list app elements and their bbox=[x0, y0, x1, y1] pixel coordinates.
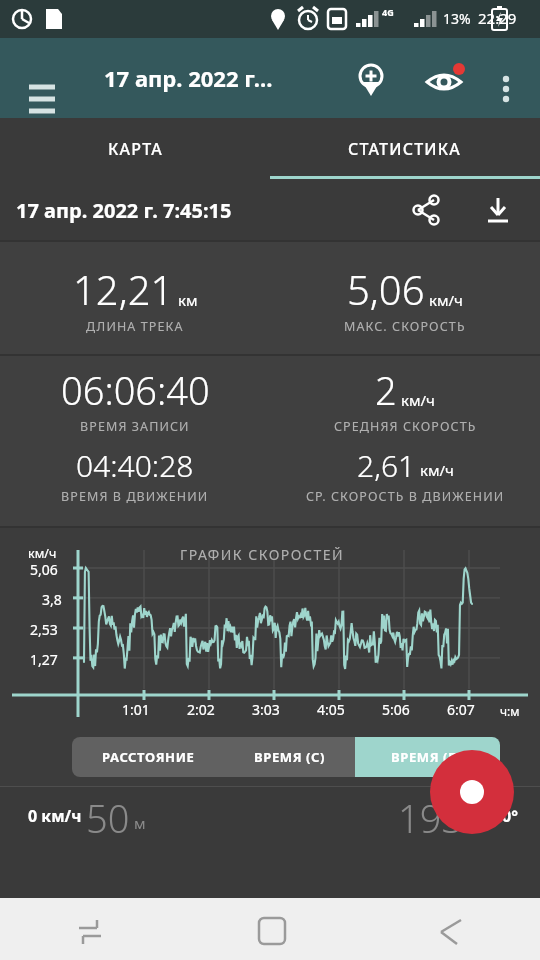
staticText: ВРЕМЯ В ДВИЖЕНИИ bbox=[61, 488, 209, 505]
staticText: ДЛИНА ТРЕКА bbox=[86, 318, 184, 335]
staticText: 04:40:28 bbox=[76, 445, 194, 486]
staticText: 06:06:40 bbox=[61, 364, 210, 416]
staticText: км/ч bbox=[429, 290, 463, 310]
button[interactable]: Menu bbox=[14, 58, 70, 114]
staticText: 3,8 bbox=[42, 590, 62, 609]
staticText: СТАТИСТИКА bbox=[348, 138, 462, 160]
staticText: км/ч bbox=[401, 390, 435, 410]
staticText: 12,21 bbox=[73, 262, 174, 316]
staticText: м bbox=[134, 813, 146, 833]
button[interactable]: РАССТОЯНИЕ bbox=[72, 737, 225, 777]
button[interactable]: Home bbox=[180, 898, 360, 960]
button[interactable]: 06:06:40 bbox=[0, 364, 270, 435]
staticText: СР. СКОРОСТЬ В ДВИЖЕНИИ bbox=[306, 488, 505, 505]
staticText: 4:05 bbox=[317, 700, 345, 719]
staticText: 2,53 bbox=[30, 620, 58, 639]
button[interactable]: Record bbox=[430, 750, 514, 834]
button[interactable]: 2,61 bbox=[270, 445, 540, 505]
staticText: 5,06 bbox=[347, 262, 425, 316]
button[interactable]: Visibility bbox=[418, 54, 470, 106]
staticText: 22:29 bbox=[478, 8, 517, 28]
staticText: 2 bbox=[375, 364, 397, 416]
staticText: 2:02 bbox=[187, 700, 215, 719]
staticText: ГРАФИК СКОРОСТЕЙ bbox=[180, 545, 345, 564]
button[interactable]: 12,21 bbox=[0, 262, 270, 335]
staticText: 5,06 bbox=[30, 560, 58, 579]
staticText: км/ч bbox=[28, 545, 57, 562]
staticText: ВРЕМЯ ЗАПИСИ bbox=[80, 418, 190, 435]
button[interactable]: Recent apps bbox=[0, 898, 180, 960]
button[interactable]: Add point bbox=[345, 54, 397, 106]
staticText: 50 bbox=[86, 792, 130, 844]
staticText: 17 апр. 2022 г… bbox=[104, 63, 273, 93]
button[interactable]: ВРЕМЯ (С) bbox=[225, 737, 355, 777]
button[interactable]: Share bbox=[400, 184, 452, 236]
staticText: 4G bbox=[382, 6, 394, 18]
button[interactable]: ВРЕМЯ (П) bbox=[355, 737, 500, 777]
staticText: МАКС. СКОРОСТЬ bbox=[344, 318, 466, 335]
staticText: 13% bbox=[443, 9, 471, 28]
staticText: 6:07 bbox=[447, 700, 475, 719]
button[interactable]: More options bbox=[482, 58, 530, 106]
button[interactable]: 04:40:28 bbox=[0, 445, 270, 505]
staticText: ВРЕМЯ (П) bbox=[391, 748, 464, 766]
staticText: 5:06 bbox=[382, 700, 410, 719]
staticText: КАРТА bbox=[108, 138, 163, 160]
staticText: км bbox=[178, 290, 198, 310]
staticText: 3:03 bbox=[252, 700, 280, 719]
staticText: ВРЕМЯ (С) bbox=[254, 748, 326, 766]
staticText: 193 bbox=[398, 792, 464, 844]
button[interactable]: 5,06 bbox=[270, 262, 540, 335]
staticText: ч:м bbox=[500, 703, 520, 719]
staticText: 0° bbox=[502, 805, 518, 827]
button[interactable]: Download bbox=[472, 184, 524, 236]
button[interactable]: КАРТА bbox=[0, 118, 270, 180]
staticText: РАССТОЯНИЕ bbox=[102, 748, 195, 766]
button[interactable]: Back bbox=[360, 898, 540, 960]
button[interactable]: 2 bbox=[270, 364, 540, 435]
staticText: 2,61 bbox=[357, 445, 416, 486]
staticText: км/ч bbox=[420, 460, 454, 480]
staticText: 1:01 bbox=[122, 700, 150, 719]
button[interactable]: СТАТИСТИКА bbox=[270, 118, 540, 180]
staticText: 1,27 bbox=[30, 650, 58, 669]
staticText: 17 апр. 2022 г. 7:45:15 bbox=[16, 197, 232, 224]
staticText: 0 км/ч bbox=[28, 805, 82, 827]
staticText: СРЕДНЯЯ СКОРОСТЬ bbox=[334, 418, 477, 435]
